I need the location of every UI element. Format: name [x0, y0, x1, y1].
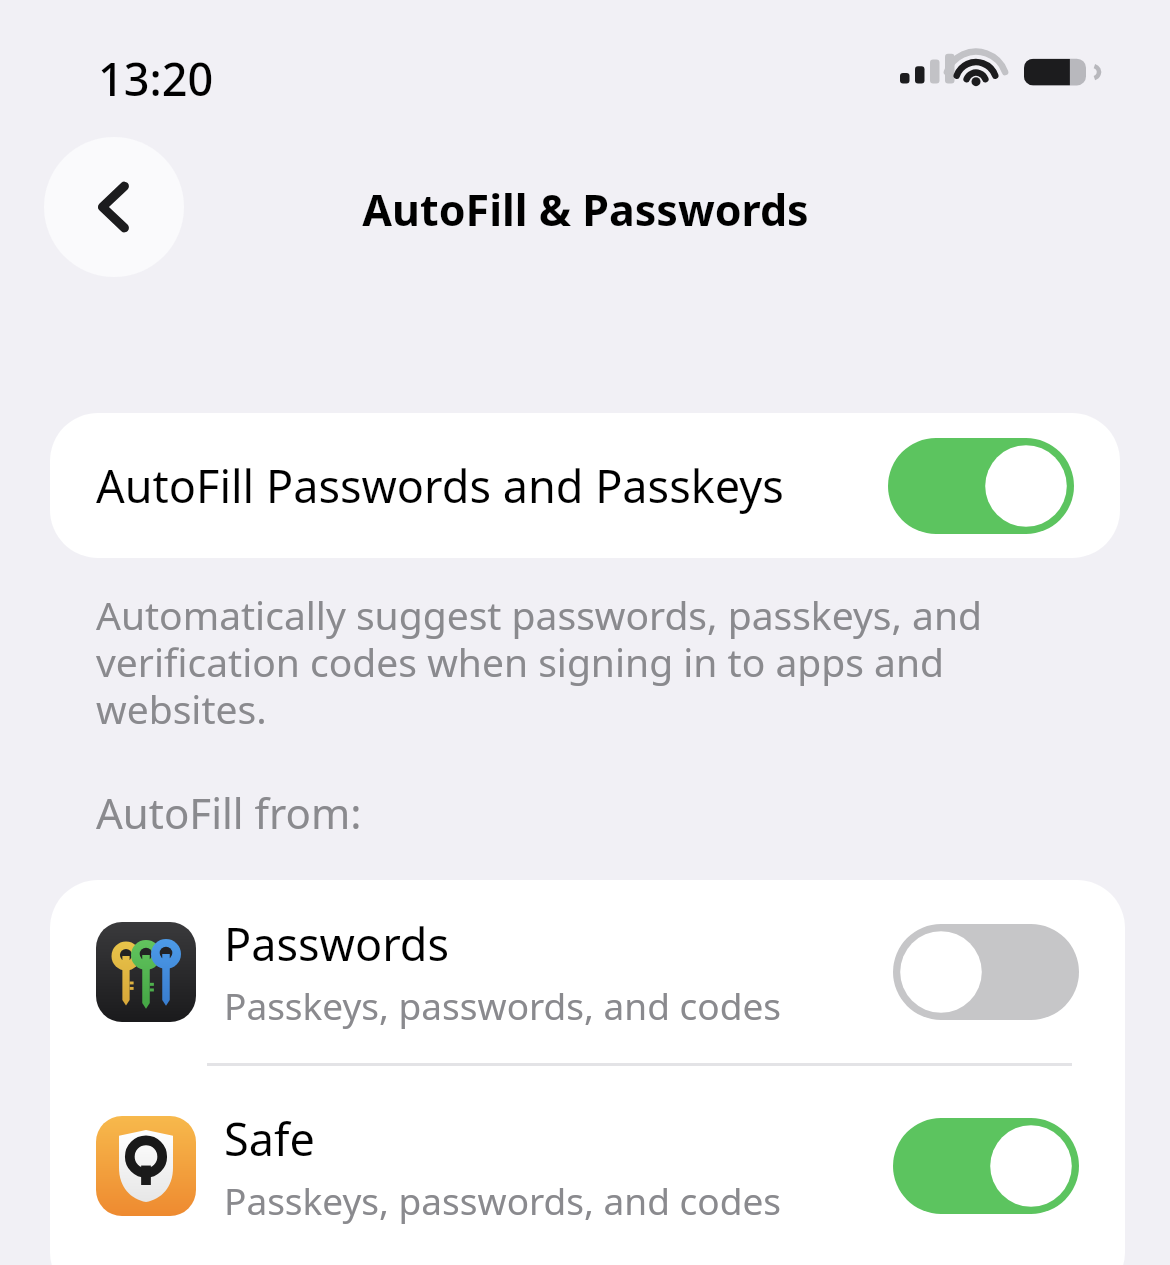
staticText: AutoFill from:	[96, 784, 362, 841]
button[interactable]: Toggle on	[888, 438, 1074, 534]
staticText: AutoFill Passwords and Passkeys	[96, 455, 888, 516]
staticText: AutoFill & Passwords	[362, 180, 809, 239]
staticText: Passwords	[224, 913, 450, 974]
staticText: Passkeys, passwords, and codes	[224, 980, 782, 1030]
button[interactable]: Back	[44, 137, 184, 277]
staticText: Safe	[224, 1108, 315, 1169]
button[interactable]: Toggle on	[893, 1118, 1079, 1214]
staticText: Passkeys, passwords, and codes	[224, 1175, 782, 1225]
button[interactable]: Passwords	[50, 880, 1125, 1063]
button[interactable]: AutoFill Passwords and Passkeys	[50, 413, 1120, 558]
button[interactable]: Toggle off	[893, 924, 1079, 1020]
button[interactable]: Safe	[50, 1066, 1125, 1265]
staticText: 13:20	[98, 48, 214, 109]
staticText: Automatically suggest passwords, passkey…	[96, 588, 996, 735]
